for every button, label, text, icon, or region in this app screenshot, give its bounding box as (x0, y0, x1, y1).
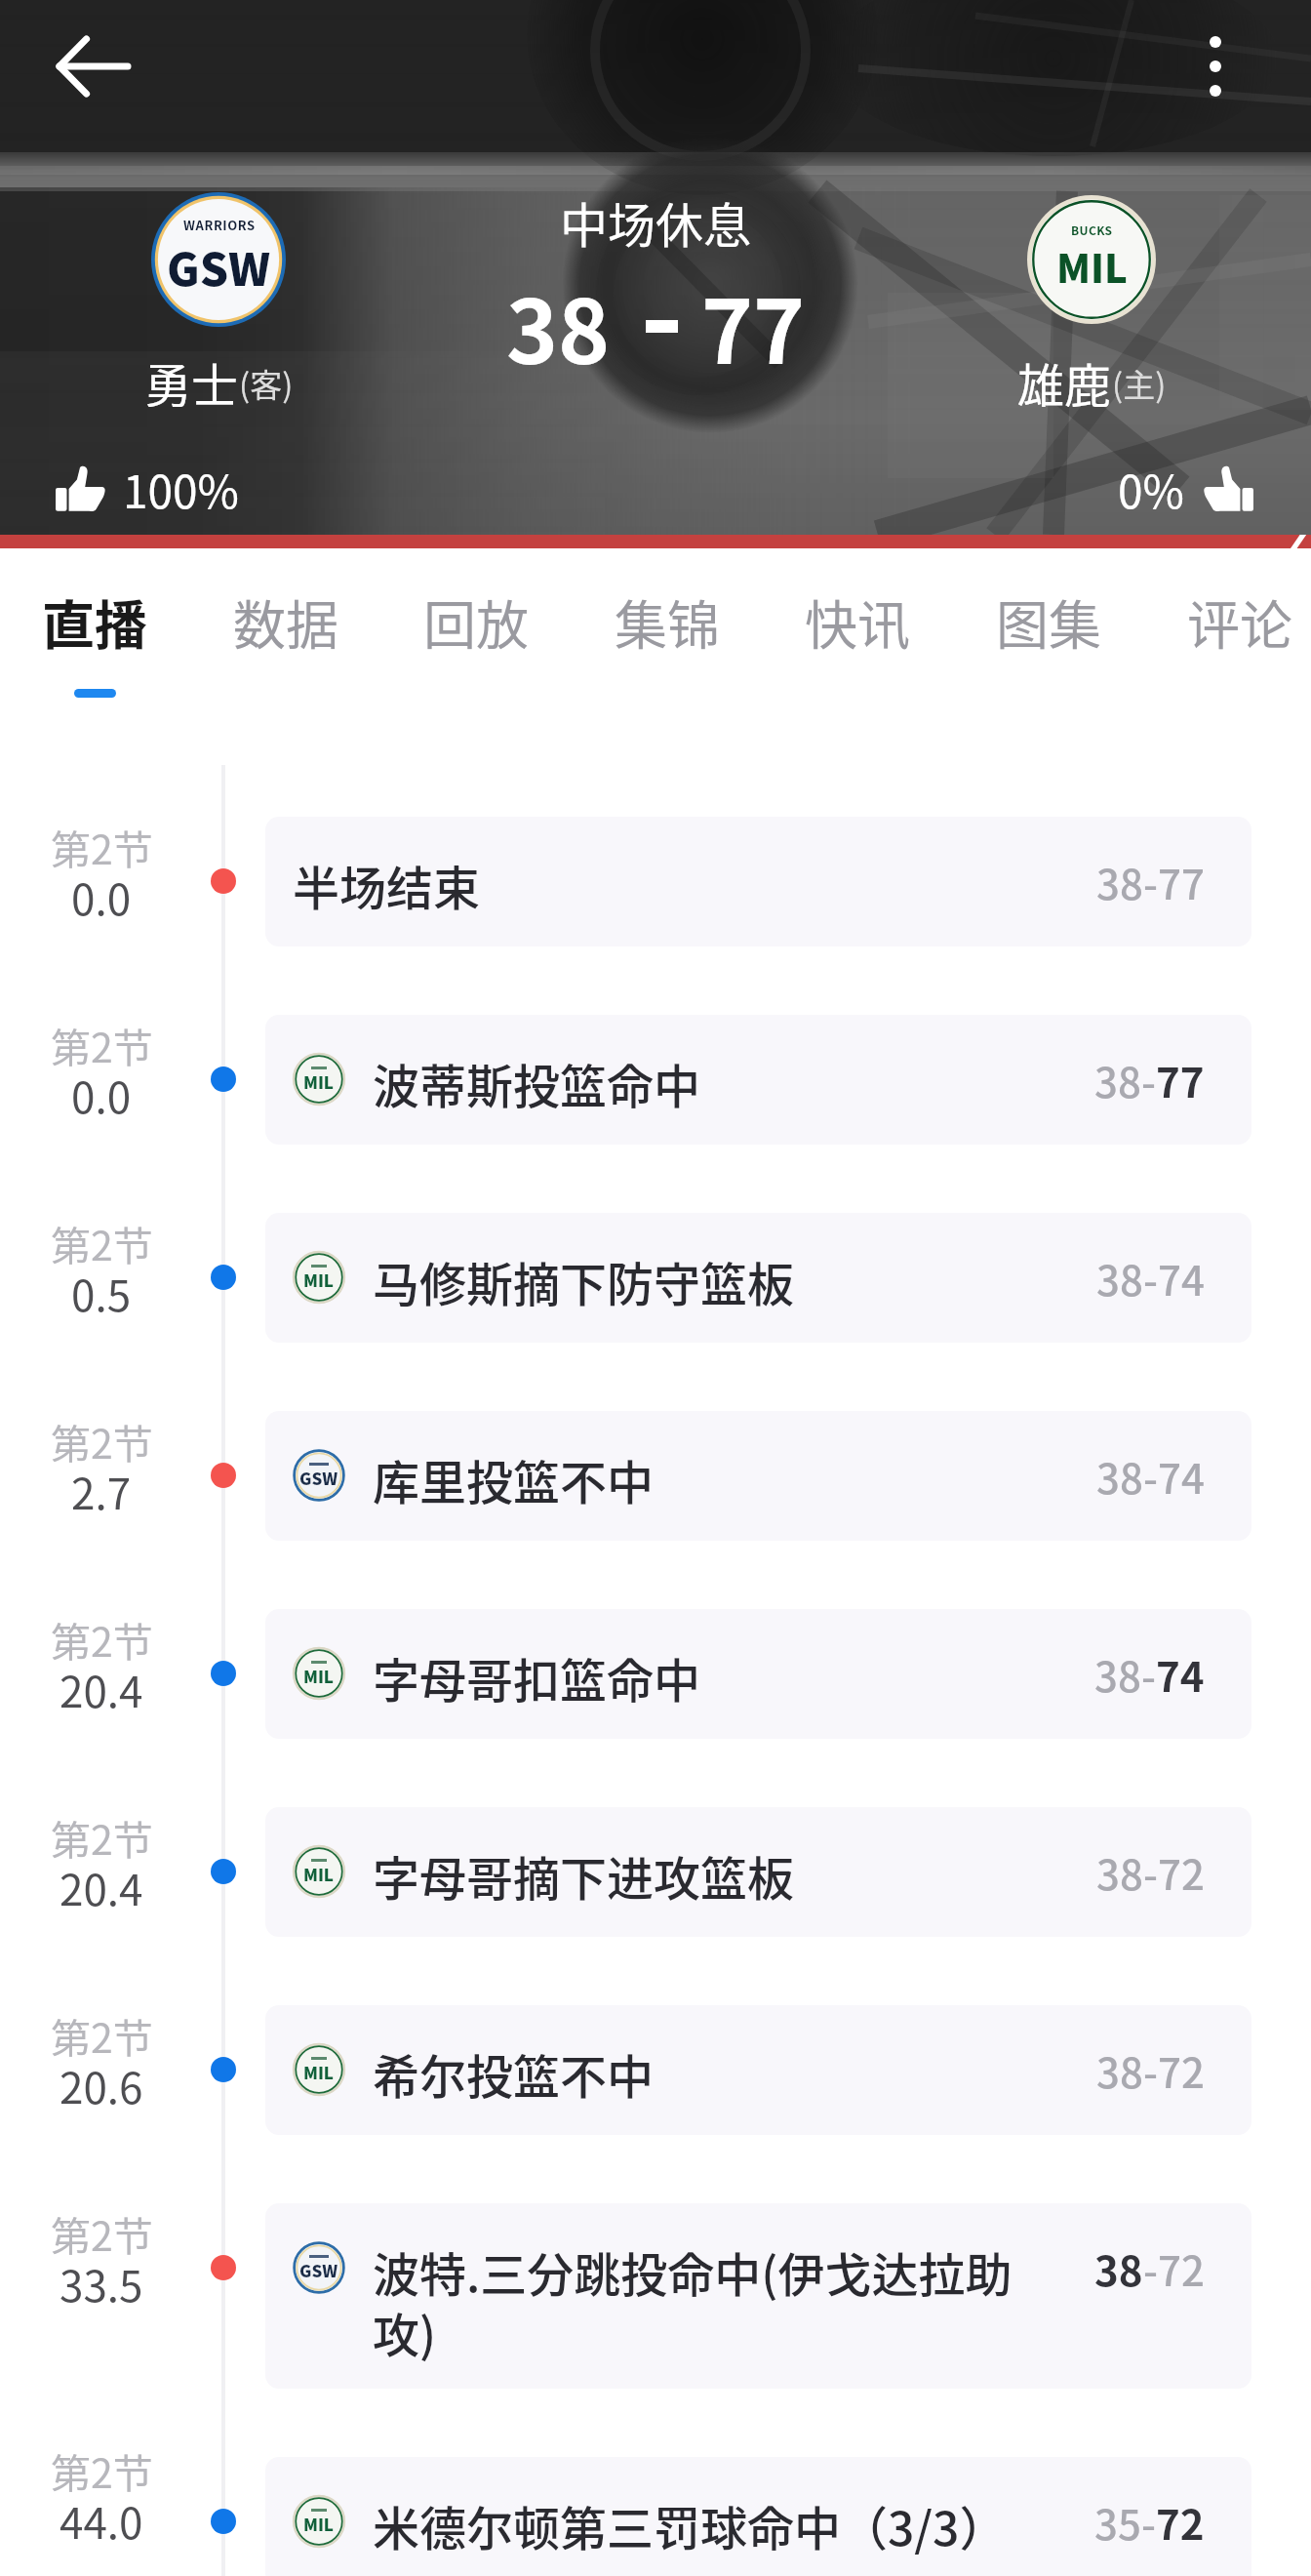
staticText: 77 (701, 262, 806, 389)
button[interactable]: 第2节 (0, 2169, 1311, 2423)
staticText: MIL (303, 1664, 335, 1688)
staticText: 第2节 (51, 2441, 153, 2499)
button[interactable]: 100% (55, 457, 239, 522)
staticText: - (1141, 1644, 1156, 1704)
button[interactable]: 第2节 (0, 981, 1311, 1179)
staticText: GSW (299, 2258, 338, 2282)
staticText: 74 (1158, 1446, 1205, 1506)
staticText: MIL (303, 1862, 335, 1886)
staticText: 20.4 (60, 1658, 143, 1720)
button[interactable]: 勇士 (62, 348, 375, 407)
staticText: MIL (303, 1268, 335, 1292)
staticText: 雄鹿 (1017, 348, 1112, 407)
button[interactable]: More options (1151, 2, 1280, 131)
staticText: 38 (1094, 1644, 1141, 1704)
staticText: 评论 (1187, 584, 1292, 660)
staticText: GSW (299, 1466, 338, 1490)
staticText: 38 (1094, 1050, 1141, 1109)
staticText: 74 (1158, 1248, 1205, 1308)
staticText: MIL (303, 2512, 335, 2536)
button[interactable]: 快讯 (763, 548, 952, 724)
staticText: 希尔投篮不中 (373, 2039, 655, 2108)
staticText: - (1143, 2238, 1158, 2298)
staticText: 勇士 (144, 348, 239, 407)
button[interactable]: 雄鹿 (935, 348, 1248, 407)
staticText: 2.7 (71, 1460, 132, 1522)
staticText: - (1143, 2040, 1158, 2100)
staticText: MIL (1056, 238, 1128, 295)
staticText: 77 (1158, 852, 1205, 911)
button[interactable]: Milwaukee Bucks (1027, 195, 1156, 324)
staticText: 马修斯摘下防守篮板 (373, 1247, 795, 1315)
staticText: 38 (1096, 1446, 1143, 1506)
button[interactable]: 数据 (191, 548, 380, 724)
staticText: 0% (1118, 457, 1184, 522)
button[interactable]: 第2节 (0, 783, 1311, 981)
staticText: 快讯 (805, 584, 910, 660)
staticText: 第2节 (51, 1808, 153, 1866)
staticText: 直播 (42, 584, 147, 660)
button[interactable]: 第2节 (0, 2423, 1311, 2576)
staticText: 数据 (233, 584, 338, 660)
button[interactable]: 回放 (381, 548, 571, 724)
staticText: (主) (1112, 360, 1167, 407)
staticText: 72 (1158, 2238, 1205, 2298)
staticText: 0.0 (71, 865, 132, 928)
staticText: - (1141, 1050, 1156, 1109)
staticText: - (1143, 1842, 1158, 1902)
staticText: 44.0 (60, 2489, 143, 2552)
button[interactable]: 第2节 (0, 1773, 1311, 1971)
staticText: GSW (167, 234, 271, 300)
staticText: 74 (1156, 1644, 1205, 1704)
staticText: 第2节 (51, 1610, 153, 1668)
button[interactable]: 第2节 (0, 1575, 1311, 1773)
staticText: 100% (123, 457, 239, 522)
staticText: 第2节 (51, 1214, 153, 1271)
staticText: 0.5 (71, 1262, 132, 1324)
button[interactable]: Golden State Warriors (151, 192, 286, 327)
button[interactable]: 第2节 (0, 1971, 1311, 2169)
button[interactable]: 集锦 (573, 548, 762, 724)
button[interactable]: 评论 (1145, 548, 1311, 724)
staticText: 72 (1156, 2492, 1205, 2552)
button[interactable]: 第2节 (0, 1179, 1311, 1377)
staticText: 20.6 (60, 2054, 143, 2116)
staticText: 回放 (423, 584, 529, 660)
staticText: 72 (1158, 2040, 1205, 2100)
staticText: 38 (1096, 1248, 1143, 1308)
staticText: 38 (1096, 852, 1143, 911)
staticText: MIL (303, 2060, 335, 2084)
staticText: 第2节 (51, 2204, 153, 2262)
staticText: 波特.三分跳投命中(伊戈达拉助攻) (373, 2237, 1022, 2365)
button[interactable]: 第2节 (0, 1377, 1311, 1575)
staticText: 35 (1094, 2492, 1141, 2552)
staticText: 38 (1096, 2040, 1143, 2100)
staticText: 库里投篮不中 (373, 1445, 655, 1513)
staticText: 米德尔顿第三罚球命中（3/3） (373, 2491, 1007, 2559)
button[interactable]: 图集 (954, 548, 1143, 724)
staticText: WARRIORS (183, 216, 256, 234)
staticText: 77 (1156, 1050, 1205, 1109)
staticText: 20.4 (60, 1856, 143, 1918)
button[interactable]: 直播 (0, 548, 189, 724)
staticText: 中场休息 (560, 187, 752, 257)
staticText: 集锦 (615, 584, 720, 660)
button[interactable]: 0% (1118, 457, 1254, 522)
staticText: 字母哥扣篮命中 (373, 1643, 701, 1711)
staticText: 第2节 (51, 2006, 153, 2064)
button[interactable]: Back (29, 2, 158, 131)
staticText: 字母哥摘下进攻篮板 (373, 1841, 795, 1910)
staticText: - (1143, 1248, 1158, 1308)
staticText: - (1143, 1446, 1158, 1506)
staticText: BUCKS (1071, 221, 1113, 238)
staticText: (客) (239, 360, 294, 407)
staticText: 半场结束 (293, 851, 481, 919)
staticText: 38 (506, 262, 611, 389)
staticText: 38 (1096, 1842, 1143, 1902)
staticText: 33.5 (60, 2252, 143, 2314)
staticText: 波蒂斯投篮命中 (373, 1049, 701, 1117)
staticText: 图集 (996, 584, 1101, 660)
staticText: 38 (1094, 2238, 1143, 2298)
staticText: 72 (1158, 1842, 1205, 1902)
staticText: 第2节 (51, 1016, 153, 1073)
